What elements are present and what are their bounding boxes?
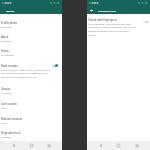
staticText: Blocked contacts	[1, 117, 22, 121]
button[interactable]: Back	[9, 141, 18, 150]
button[interactable]: Unlock with fingerprint	[87, 14, 150, 40]
button[interactable]: Recents	[132, 141, 141, 150]
staticText: Everyone	[1, 39, 12, 42]
staticText: Disabled	[1, 135, 11, 138]
button[interactable]: About	[0, 31, 62, 45]
staticText: Fingerprint lock	[98, 9, 117, 12]
staticText: Everyone	[1, 25, 12, 28]
staticText: Unlock with fingerprint	[88, 18, 117, 22]
button[interactable]: Read receipts	[0, 60, 62, 83]
button[interactable]: Profile photo	[0, 17, 62, 31]
staticText: When enabled, you'll need to use your fi…	[88, 22, 137, 37]
staticText: None	[1, 121, 8, 124]
button[interactable]: Groups	[0, 83, 62, 98]
button[interactable]: Blocked contacts	[0, 113, 62, 127]
button[interactable]: Home	[114, 141, 123, 150]
staticText: None	[1, 106, 8, 109]
staticText: My contacts	[1, 53, 15, 56]
button[interactable]: Status	[0, 45, 62, 60]
button[interactable]: Live location	[0, 98, 62, 113]
staticText: Read receipts	[1, 64, 18, 68]
staticText: Groups	[1, 87, 11, 91]
button[interactable]: Recents	[44, 141, 53, 150]
staticText: Fingerprint lock	[1, 131, 21, 135]
button[interactable]: Fingerprint lock	[0, 127, 62, 141]
button[interactable]: Back	[89, 8, 94, 13]
staticText: About	[1, 35, 9, 39]
button[interactable]: Privacy	[0, 6, 62, 14]
staticText: Status	[1, 49, 9, 53]
staticText: If turned off you won't send or receive …	[1, 68, 53, 79]
button[interactable]: Back	[96, 141, 105, 150]
staticText: Live location	[1, 102, 17, 106]
staticText: Privacy	[6, 9, 15, 12]
button[interactable]: Home	[27, 141, 36, 150]
staticText: Profile photo	[1, 21, 18, 25]
staticText: Everyone	[1, 91, 12, 94]
